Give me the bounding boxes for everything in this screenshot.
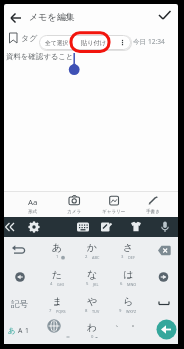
staticText: ま [52,295,63,308]
staticText: A [18,326,23,335]
staticText: ABC [92,255,100,260]
staticText: Aa [28,197,38,208]
staticText: 1 [56,254,59,260]
staticText: 5 [86,281,89,287]
staticText: ギャラリー [102,209,126,215]
button[interactable] [146,237,178,264]
staticText: WXYZ [126,309,137,314]
staticText: 資料を確認すること [6,52,74,61]
staticText: MNO [127,282,137,287]
button[interactable]: 手書き [136,193,170,215]
staticText: ⋮ [119,39,126,47]
button[interactable] [39,317,75,344]
staticText: 形式 [28,209,38,215]
button[interactable]: ら [110,291,146,317]
staticText: た [52,268,63,281]
staticText: さ [123,241,134,254]
button[interactable]: あ [4,317,39,344]
staticText: 。 [131,318,140,329]
button[interactable]: Aa [16,193,50,215]
button[interactable]: カメラ [57,193,91,215]
staticText: 全て選択 [45,39,69,46]
button[interactable]: な [75,264,110,291]
staticText: PQRS [56,309,66,314]
staticText: や [87,295,98,308]
staticText: 貼り付け [81,39,107,47]
button[interactable]: 全て選択 [39,35,74,50]
staticText: あ [52,241,63,254]
staticText: 3 [121,254,124,260]
staticText: TUV [92,309,100,314]
staticText: 手書き [146,209,160,215]
button[interactable]: 記号 [4,291,39,317]
button[interactable]: た [39,264,75,291]
staticText: カメラ [67,209,82,215]
button[interactable] [146,291,178,317]
button[interactable]: は [110,264,146,291]
staticText: 9 [119,308,122,314]
button[interactable]: か [75,237,110,264]
button[interactable]: さ [110,237,146,264]
staticText: ら [123,295,134,308]
staticText: 0 [91,334,94,340]
staticText: GHI [57,282,64,287]
button[interactable]: ⋮ [113,35,131,50]
staticText: な [87,268,98,281]
button[interactable] [4,4,178,28]
button[interactable]: あ [39,237,75,264]
button[interactable] [146,264,178,291]
button[interactable]: ま [39,291,75,317]
staticText: 、 [115,318,124,329]
staticText: JKL [93,282,99,287]
button[interactable]: や [75,291,110,317]
button[interactable] [4,217,178,237]
staticText: あ [8,326,16,335]
button[interactable] [4,264,39,291]
staticText: か [87,241,98,254]
staticText: は [123,268,134,281]
staticText: 記号 [11,299,29,310]
staticText: DEF [128,255,135,260]
button[interactable] [110,317,146,344]
staticText: 今日 12:34 [133,37,165,46]
staticText: 4 [50,281,53,287]
staticText: わ [87,321,98,334]
button[interactable] [4,237,39,264]
staticText: 7 [49,308,52,314]
button[interactable]: 貼り付け [74,35,113,50]
staticText: 2 [85,254,88,260]
staticText: メモを編集 [29,11,75,22]
staticText: 1 [25,326,29,335]
button[interactable]: ギャラリー [97,193,131,215]
staticText: 8 [85,308,88,314]
staticText: 6 [120,281,123,287]
button[interactable] [146,317,178,344]
staticText: タグ [21,33,38,43]
button[interactable]: わ [75,317,110,344]
